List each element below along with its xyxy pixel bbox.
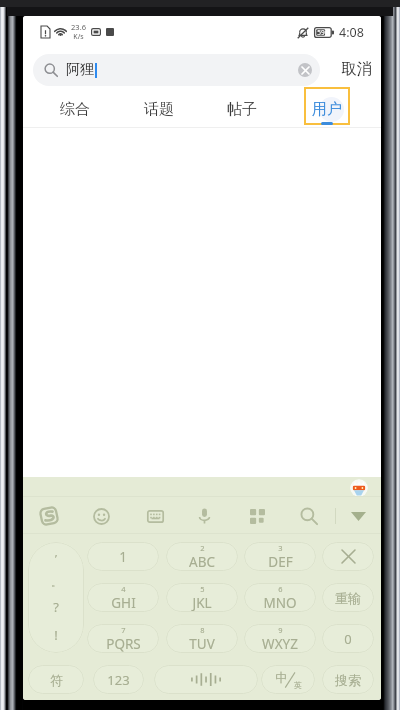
staticText: K/s (73, 32, 84, 42)
button[interactable]: 8 (166, 624, 238, 653)
button[interactable]: 5 (166, 583, 238, 612)
staticText: MNO (263, 594, 297, 612)
staticText: 帖子 (227, 100, 257, 119)
button[interactable]: 综合 (52, 90, 98, 128)
staticText: 3 (278, 543, 283, 553)
staticText: 。 (51, 576, 61, 589)
button[interactable]: 帖子 (219, 90, 265, 128)
staticText: 59 (317, 28, 325, 37)
staticText: TUV (189, 635, 215, 653)
button[interactable]: Keyboard layout (141, 502, 169, 530)
staticText: ! (54, 626, 58, 644)
staticText: 123 (107, 671, 130, 689)
button[interactable]: Delete (322, 542, 374, 571)
button[interactable]: 用户 (304, 90, 350, 128)
staticText: ABC (189, 553, 215, 571)
button[interactable]: 搜索 (322, 665, 374, 694)
staticText: 8 (200, 625, 205, 635)
staticText: 7 (121, 625, 126, 635)
staticText: 9 (278, 625, 283, 635)
button[interactable]: 3 (244, 542, 316, 571)
staticText: JKL (192, 594, 212, 612)
button[interactable]: Hide keyboard (344, 502, 372, 530)
staticText: 搜索 (335, 672, 361, 688)
staticText: 重输 (335, 590, 361, 606)
staticText: DEF (268, 553, 293, 571)
button[interactable]: 话题 (136, 90, 182, 128)
staticText: ’ (55, 551, 57, 566)
button[interactable]: Chinese English toggle (261, 665, 315, 694)
staticText: 5 (200, 584, 205, 594)
button[interactable]: More tools (243, 502, 271, 530)
button[interactable]: Sogou input (35, 502, 63, 530)
staticText: 0 (344, 630, 352, 648)
button[interactable]: ’ (28, 542, 84, 653)
staticText: 23.6 (71, 22, 86, 32)
button[interactable]: Avatar (350, 479, 368, 497)
staticText: 英 (294, 680, 302, 690)
button[interactable]: 重输 (322, 583, 374, 612)
staticText: 用户 (312, 100, 342, 119)
button[interactable]: 9 (244, 624, 316, 653)
staticText: 6 (278, 584, 283, 594)
staticText: 话题 (144, 100, 174, 119)
button[interactable]: 阿狸 (33, 54, 320, 86)
staticText: PQRS (106, 635, 141, 653)
button[interactable]: 符 (28, 665, 84, 694)
button[interactable]: 1 (87, 542, 159, 571)
button[interactable]: Voice input (190, 502, 218, 530)
staticText: 1 (119, 548, 127, 566)
staticText: 4 (121, 584, 126, 594)
staticText: GHI (111, 594, 136, 612)
button[interactable]: 4 (87, 583, 159, 612)
button[interactable]: Emoji (87, 502, 115, 530)
staticText: 2 (200, 543, 205, 553)
button[interactable]: Clear text (298, 63, 312, 77)
staticText: 综合 (60, 100, 90, 119)
button[interactable]: 123 (93, 665, 144, 694)
button[interactable]: Space (154, 665, 258, 694)
button[interactable]: 0 (322, 624, 374, 653)
button[interactable]: Search (295, 502, 323, 530)
staticText: 符 (50, 672, 63, 688)
staticText: 阿狸 (66, 61, 94, 79)
staticText: 中 (275, 670, 288, 686)
button[interactable]: 取消 (336, 53, 377, 85)
button[interactable]: 2 (166, 542, 238, 571)
button[interactable]: 7 (87, 624, 159, 653)
staticText: ? (53, 598, 59, 616)
staticText: 取消 (341, 59, 372, 79)
staticText: 4:08 (339, 24, 364, 41)
staticText: WXYZ (262, 635, 298, 653)
button[interactable]: 6 (244, 583, 316, 612)
